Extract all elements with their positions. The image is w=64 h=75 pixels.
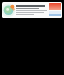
other: Organization logo: [3, 4, 15, 16]
button[interactable]: Organization logo: [2, 2, 62, 18]
button[interactable]: Badge: [49, 11, 61, 16]
button[interactable]: Highlight: [49, 3, 61, 10]
